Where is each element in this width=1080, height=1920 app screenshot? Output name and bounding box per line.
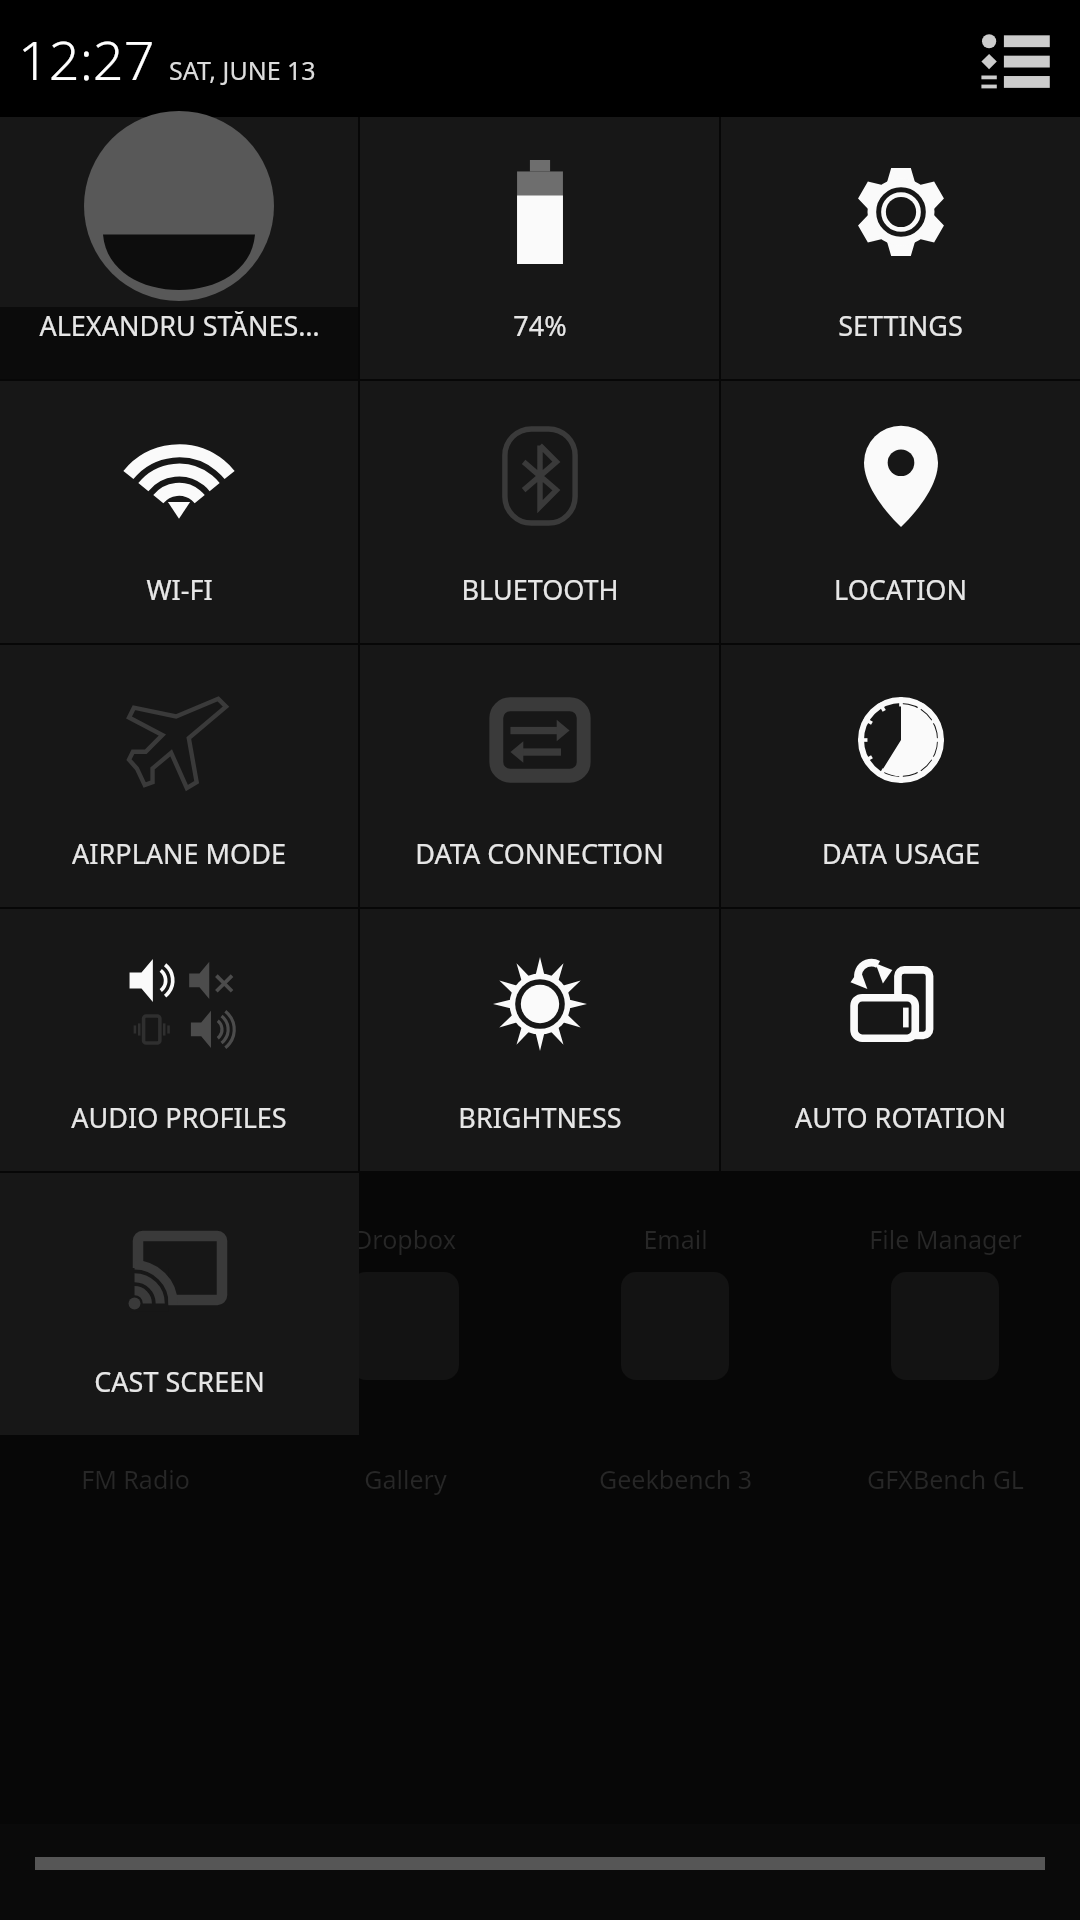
staticText: Dropbox [354, 1222, 456, 1256]
staticText: FM Radio [81, 1462, 190, 1496]
button[interactable]: BLUETOOTH [360, 381, 719, 643]
staticText: LOCATION [834, 571, 967, 608]
staticText: Geekbench 3 [599, 1462, 752, 1496]
staticText: File Manager [869, 1222, 1022, 1256]
button[interactable]: AUTO ROTATION [721, 909, 1080, 1171]
staticText: DATA USAGE [822, 835, 980, 872]
staticText: Gallery [364, 1462, 447, 1496]
staticText: SAT, JUNE 13 [169, 53, 316, 87]
staticText: BRIGHTNESS [458, 1099, 622, 1136]
staticText: AUTO ROTATION [795, 1099, 1006, 1136]
staticText: BLUETOOTH [461, 571, 619, 608]
button[interactable]: LOCATION [721, 381, 1080, 643]
staticText: AUDIO PROFILES [71, 1099, 287, 1136]
staticText: 74% [513, 307, 567, 344]
button[interactable]: CAST SCREEN [0, 1173, 359, 1435]
staticText: WI-FI [146, 571, 213, 608]
staticText: ALEXANDRU STĂNES… [39, 307, 320, 344]
button[interactable]: WI-FI [0, 381, 358, 643]
button[interactable]: 74% [360, 117, 719, 379]
staticText: SETTINGS [838, 307, 963, 344]
staticText: 12:27 [18, 22, 155, 96]
button[interactable]: DATA USAGE [721, 645, 1080, 907]
button[interactable]: AUDIO PROFILES [0, 909, 358, 1171]
button[interactable]: AIRPLANE MODE [0, 645, 358, 907]
button[interactable]: Notification list [978, 22, 1052, 96]
button[interactable]: BRIGHTNESS [360, 909, 719, 1171]
staticText: Email [643, 1222, 708, 1256]
button[interactable]: ALEXANDRU STĂNES… [0, 117, 358, 379]
button[interactable]: DATA CONNECTION [360, 645, 719, 907]
staticText: AIRPLANE MODE [72, 835, 286, 872]
staticText: GFXBench GL [867, 1462, 1024, 1496]
staticText: CAST SCREEN [94, 1363, 265, 1400]
staticText: DATA CONNECTION [415, 835, 664, 872]
button[interactable]: SETTINGS [721, 117, 1080, 379]
